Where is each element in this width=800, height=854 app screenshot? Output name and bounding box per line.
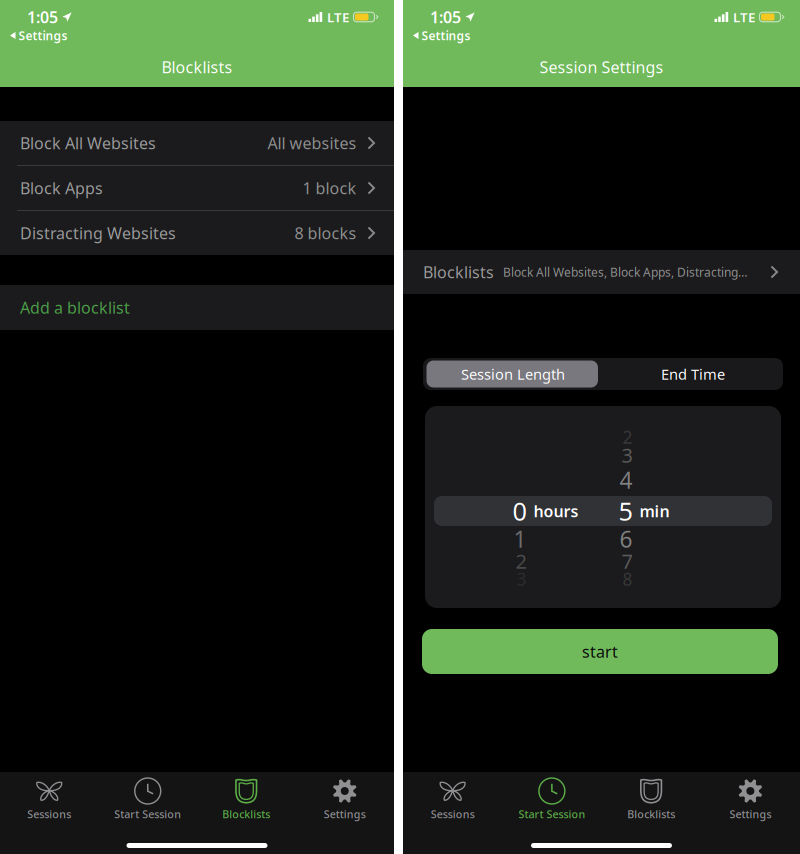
button[interactable]: Settings — [295, 772, 394, 822]
staticText: 5 — [618, 494, 632, 528]
staticText: 2 — [515, 548, 526, 574]
staticText: 7 — [621, 548, 632, 574]
staticText: Block All Websites — [20, 132, 156, 154]
staticText: Block All Websites, Block Apps, Distract… — [503, 264, 747, 280]
staticText: 0 — [512, 494, 526, 528]
staticText: start — [582, 641, 618, 662]
button[interactable]: Sessions — [403, 772, 502, 822]
staticText: Session Settings — [539, 56, 663, 78]
staticText: 4 — [619, 465, 632, 495]
button[interactable]: Blocklists — [601, 772, 701, 822]
staticText: Blocklists — [423, 261, 494, 283]
staticText: 1 block — [302, 177, 356, 199]
button[interactable]: Block Apps — [0, 166, 394, 210]
staticText: Sessions — [431, 807, 475, 821]
staticText: Settings — [729, 807, 771, 821]
staticText: 1:05 — [430, 6, 461, 28]
button[interactable]: Sessions — [0, 772, 98, 822]
button[interactable]: Start Session — [98, 772, 197, 822]
staticText: 8 — [622, 567, 632, 590]
staticText: Sessions — [27, 807, 71, 821]
staticText: 3 — [621, 442, 632, 468]
staticText: End Time — [661, 364, 725, 384]
button[interactable]: Add a blocklist — [0, 285, 394, 330]
staticText: Start Session — [114, 807, 181, 821]
staticText: LTE — [327, 8, 349, 26]
staticText: LTE — [733, 8, 755, 26]
staticText: 1 — [513, 524, 526, 554]
staticText: 3 — [516, 567, 526, 590]
staticText: min — [639, 500, 669, 522]
button[interactable]: End Time — [603, 358, 783, 390]
button[interactable]: Block All Websites — [0, 121, 394, 165]
button[interactable]: Settings — [701, 772, 800, 822]
staticText: Add a blocklist — [20, 297, 130, 318]
staticText: Block Apps — [20, 177, 103, 199]
button[interactable]: start — [422, 629, 778, 674]
staticText: 2 — [622, 425, 632, 448]
button[interactable]: Blocklists — [403, 250, 800, 294]
staticText: Start Session — [518, 807, 585, 821]
staticText: hours — [533, 500, 578, 522]
staticText: Blocklists — [627, 807, 675, 821]
staticText: Settings — [18, 27, 67, 43]
button[interactable]: Blocklists — [197, 772, 295, 822]
staticText: Settings — [421, 27, 470, 43]
button[interactable]: Start Session — [502, 772, 601, 822]
staticText: 8 blocks — [294, 222, 356, 244]
staticText: Distracting Websites — [20, 222, 176, 244]
staticText: Blocklists — [161, 56, 232, 78]
button[interactable]: Distracting Websites — [0, 211, 394, 255]
staticText: 6 — [619, 524, 632, 554]
staticText: Session Length — [461, 364, 565, 384]
staticText: 1:05 — [27, 6, 58, 28]
staticText: Settings — [324, 807, 366, 821]
staticText: Blocklists — [222, 807, 270, 821]
button[interactable]: Session Length — [423, 358, 603, 390]
staticText: All websites — [267, 132, 356, 154]
